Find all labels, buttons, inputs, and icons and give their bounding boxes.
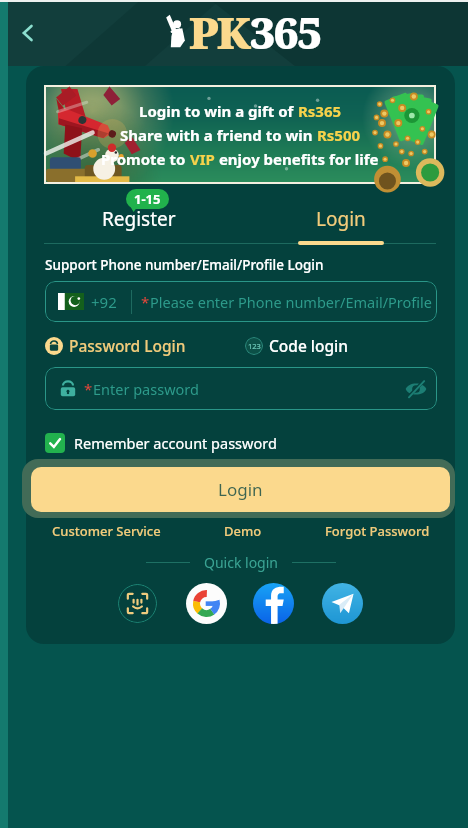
- staticText: +92: [91, 292, 117, 312]
- button[interactable]: 123: [245, 335, 349, 356]
- staticText: Quick login: [204, 553, 278, 572]
- button[interactable]: Sign in with Google: [186, 583, 227, 624]
- button[interactable]: Password Login: [45, 335, 186, 356]
- staticText: Share with a friend to win: [120, 125, 317, 145]
- staticText: 123: [248, 341, 261, 351]
- button[interactable]: *: [45, 367, 437, 410]
- button[interactable]: Sign in with Telegram: [322, 583, 363, 624]
- staticText: *: [84, 379, 93, 399]
- staticText: Support Phone number/Email/Profile Login: [45, 256, 324, 274]
- staticText: 365: [250, 2, 321, 62]
- staticText: Enter password: [93, 379, 199, 399]
- staticText: enjoy benefits for life: [215, 149, 379, 169]
- staticText: Promote to: [101, 149, 190, 169]
- staticText: Password Login: [69, 335, 186, 356]
- button[interactable]: Register: [87, 203, 191, 235]
- button[interactable]: Login to win a gift of: [44, 85, 436, 184]
- button[interactable]: +92: [45, 281, 437, 322]
- staticText: 1-15: [134, 190, 161, 208]
- staticText: Rs365: [298, 101, 342, 121]
- button[interactable]: Sign in with Facebook: [253, 583, 294, 624]
- staticText: Please enter Phone number/Email/Profile: [150, 292, 432, 312]
- button[interactable]: Show password: [401, 374, 431, 404]
- staticText: Login: [316, 206, 366, 232]
- staticText: Remember account password: [74, 433, 277, 453]
- button[interactable]: Login: [31, 467, 450, 512]
- staticText: Register: [102, 206, 176, 232]
- button[interactable]: Customer Service: [52, 522, 161, 540]
- button[interactable]: Back: [10, 15, 46, 51]
- staticText: Login: [218, 478, 263, 501]
- button[interactable]: Demo: [224, 522, 262, 540]
- button[interactable]: Remember account password: [45, 433, 277, 453]
- staticText: Login to win a gift of: [139, 101, 298, 121]
- staticText: Rs500: [317, 125, 361, 145]
- button[interactable]: Forgot Password: [325, 522, 430, 540]
- staticText: *: [141, 292, 150, 312]
- staticText: Code login: [269, 335, 349, 356]
- button[interactable]: Face ID login: [118, 584, 157, 623]
- button[interactable]: Login: [289, 203, 393, 235]
- staticText: VIP: [190, 149, 215, 169]
- staticText: PK: [189, 2, 250, 62]
